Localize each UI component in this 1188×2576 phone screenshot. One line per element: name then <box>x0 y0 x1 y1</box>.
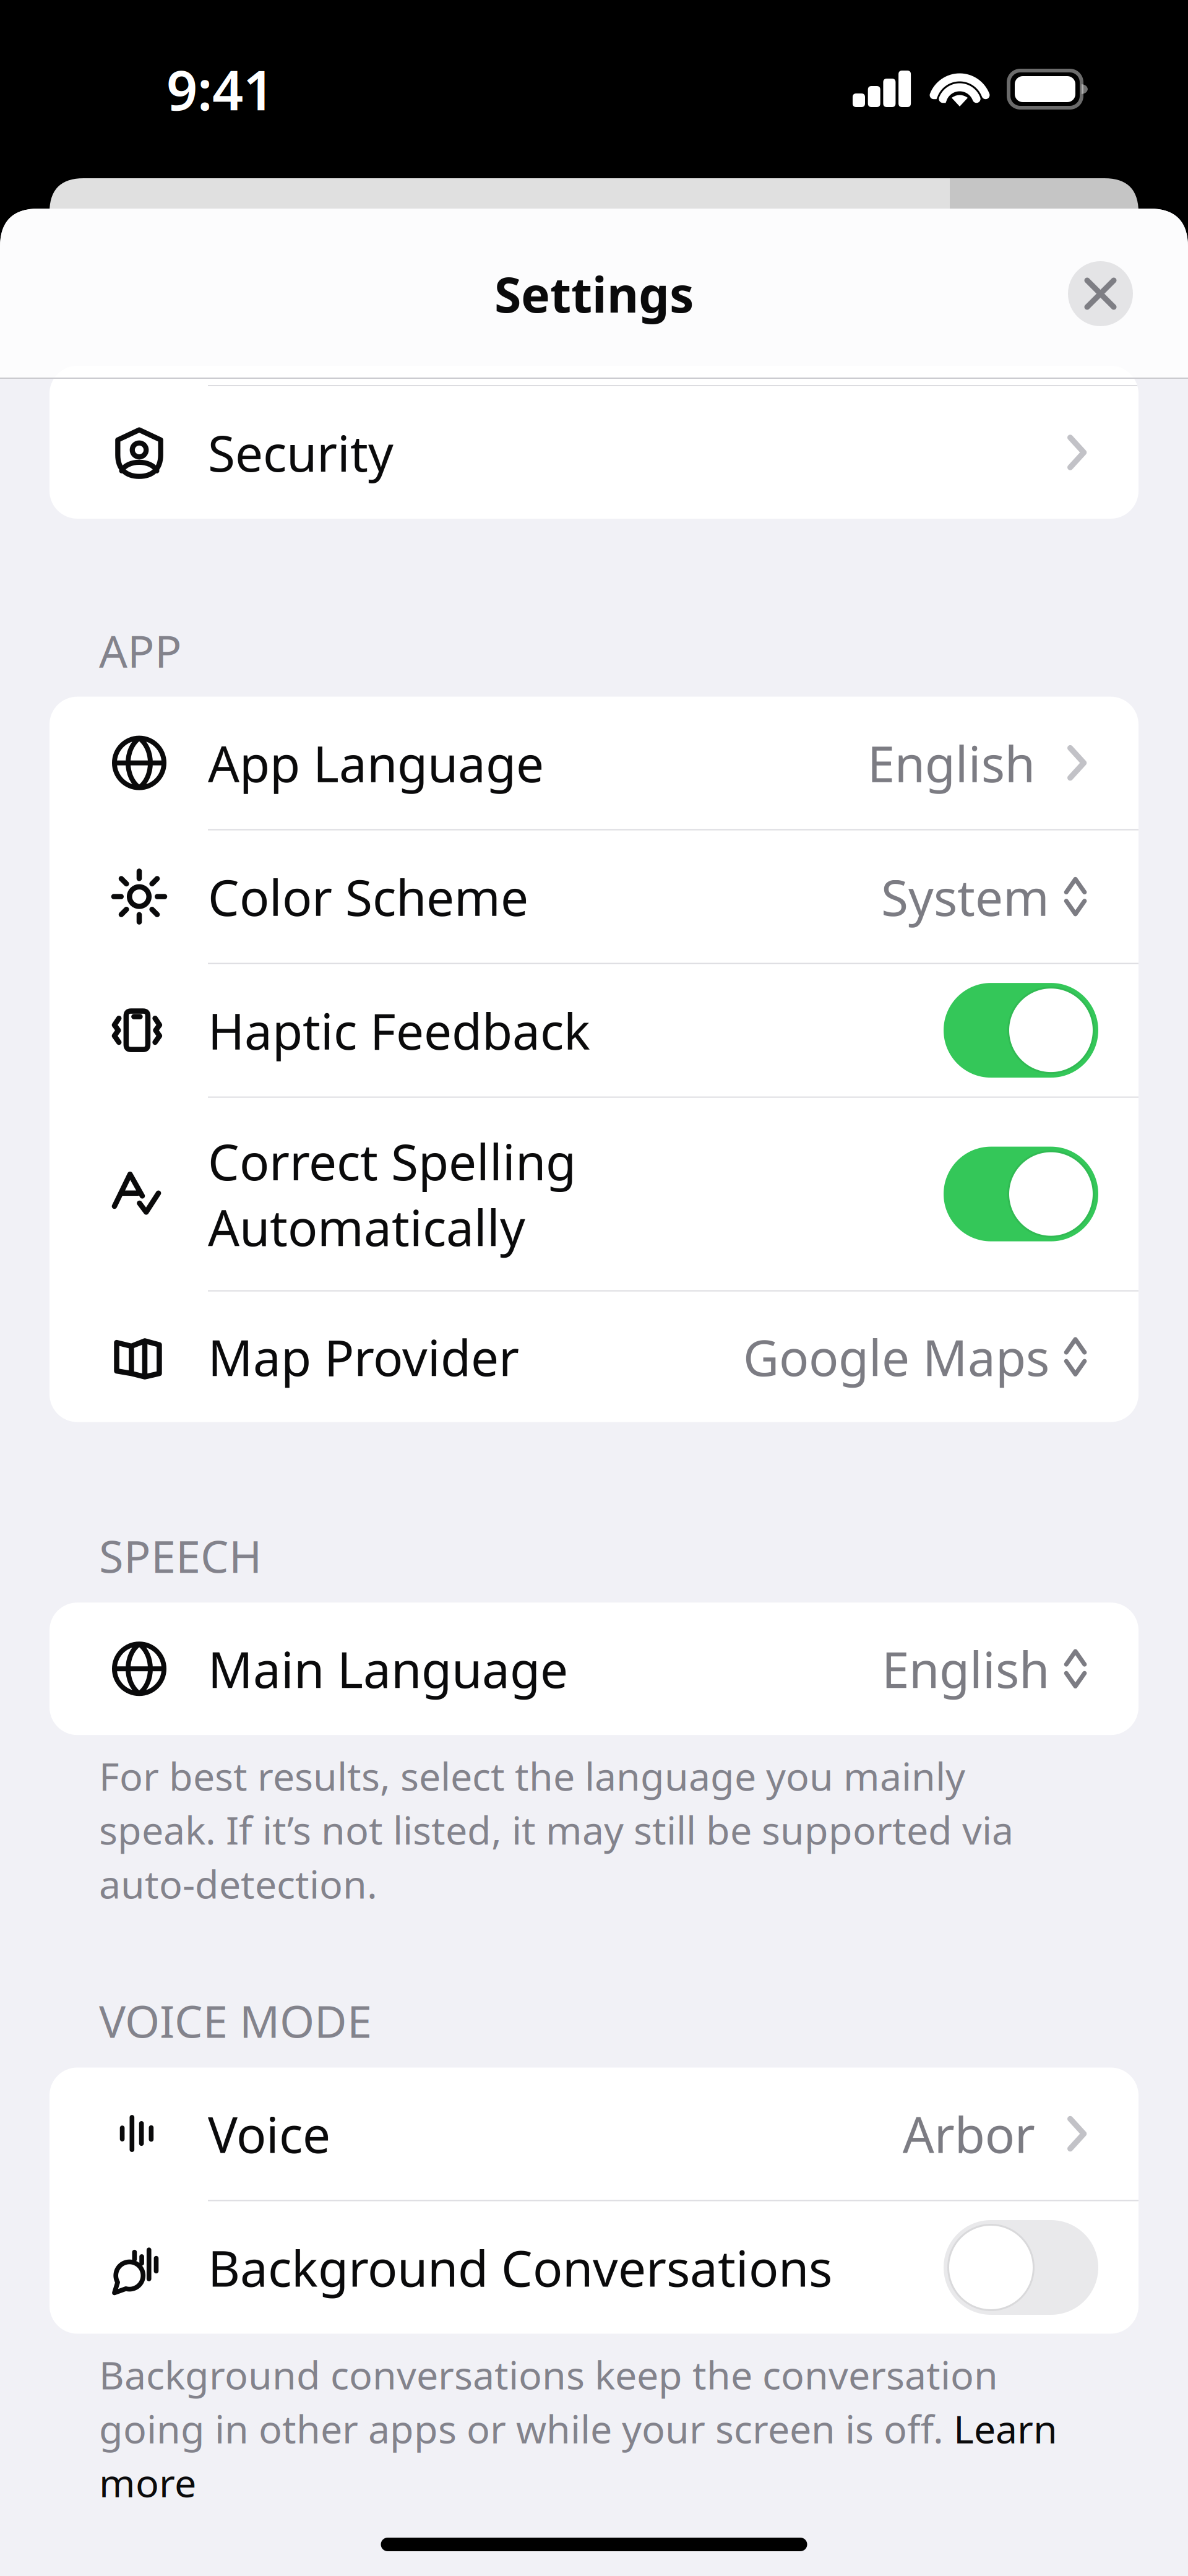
staticText: Map Provider <box>208 1324 519 1390</box>
button[interactable]: App Language <box>49 697 1138 829</box>
staticText: VOICE MODE <box>99 1991 372 2050</box>
button[interactable]: Color Scheme <box>49 830 1138 963</box>
staticText: Background Conversations <box>208 2235 832 2300</box>
staticText: Haptic Feedback <box>208 997 590 1063</box>
button[interactable]: Map Provider <box>49 1291 1138 1422</box>
button[interactable]: Background Conversations <box>49 2201 1138 2334</box>
button[interactable]: Correct Spelling Automatically <box>49 1098 1138 1290</box>
staticText: System <box>881 864 1049 929</box>
staticText: App Language <box>208 730 544 796</box>
staticText: For best results, select the language yo… <box>99 1750 965 1801</box>
button[interactable]: Haptic Feedback <box>49 964 1138 1097</box>
staticText: Settings <box>494 261 694 326</box>
staticText: APP <box>99 621 182 680</box>
staticText: Main Language <box>208 1636 568 1702</box>
staticText: 9:41 <box>166 53 274 125</box>
staticText: Color Scheme <box>208 864 528 929</box>
staticText: Voice <box>208 2101 330 2167</box>
button[interactable]: Security <box>49 386 1138 519</box>
staticText: Security <box>208 420 394 485</box>
staticText: Arbor <box>903 2101 1035 2167</box>
button[interactable]: Main Language <box>49 1603 1138 1735</box>
staticText: Correct Spelling Automatically <box>208 1128 576 1260</box>
staticText: going in other apps or while your screen… <box>99 2403 953 2454</box>
staticText: more <box>99 2456 196 2508</box>
staticText: SPEECH <box>99 1526 262 1585</box>
staticText: Background conversations keep the conver… <box>99 2349 998 2400</box>
staticText: auto-detection. <box>99 1858 377 1909</box>
staticText: Learn <box>953 2403 1057 2454</box>
staticText: speak. If it’s not listed, it may still … <box>99 1804 1014 1855</box>
button[interactable]: Close <box>1068 261 1133 326</box>
staticText: English <box>882 1636 1049 1702</box>
button[interactable]: Voice <box>49 2068 1138 2200</box>
staticText: English <box>867 730 1035 796</box>
staticText: Google Maps <box>743 1324 1049 1390</box>
